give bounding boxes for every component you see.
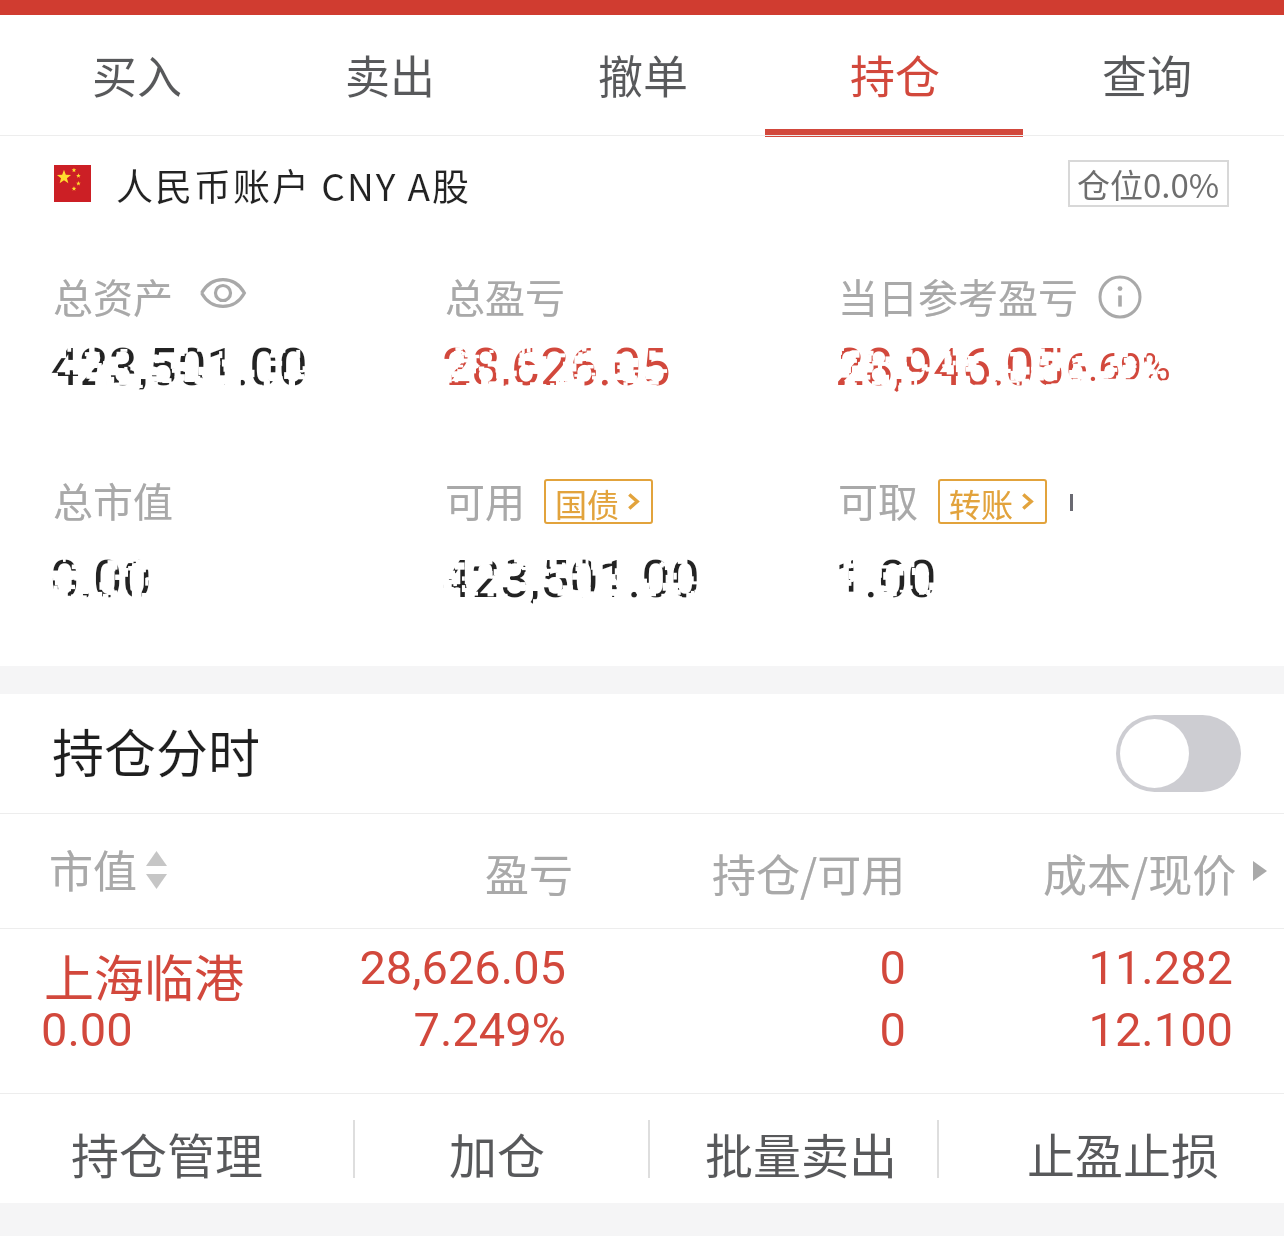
staticText: 0	[406, 1002, 906, 1057]
button[interactable]: 持仓管理	[0, 1094, 353, 1203]
button[interactable]: 卖出	[264, 15, 517, 136]
button[interactable]: Information	[1098, 275, 1142, 319]
button[interactable]: 止盈止损	[937, 1094, 1284, 1203]
staticText: 当日参考盈亏	[838, 267, 1078, 325]
staticText: 撤单	[598, 42, 689, 107]
staticText: 持仓分时	[52, 713, 261, 788]
staticText: 持仓	[850, 42, 941, 107]
staticText: 国债	[555, 480, 620, 525]
staticText: 7.249%	[66, 1002, 566, 1057]
staticText: 持仓管理	[71, 1118, 264, 1188]
button[interactable]: More columns	[1240, 839, 1284, 903]
staticText: 总资产	[53, 267, 173, 325]
staticText: 买入	[92, 42, 183, 107]
staticText: 持仓/可用	[712, 841, 906, 905]
button[interactable]: 加仓	[353, 1094, 648, 1203]
staticText: 卖出	[345, 42, 436, 107]
staticText: 28,626.05	[442, 337, 671, 398]
staticText: 可取	[838, 471, 918, 529]
button[interactable]: 持仓	[769, 15, 1021, 136]
staticText: 查询	[1102, 42, 1193, 107]
staticText: 仓位0.0%	[1077, 160, 1220, 207]
staticText: 1.00	[835, 549, 937, 610]
button[interactable]: 仓位0.0%	[1077, 160, 1220, 207]
button[interactable]: 转账	[938, 479, 1047, 524]
staticText: 6.69%	[1066, 345, 1171, 391]
staticText: 423,501.00	[50, 337, 308, 398]
button[interactable]: Toggle intraday chart	[1116, 715, 1241, 792]
button[interactable]: 批量卖出	[648, 1094, 937, 1203]
button[interactable]: 查询	[1021, 15, 1273, 136]
staticText: 人民币账户 CNY A股	[116, 158, 472, 212]
staticText: 11.282	[733, 940, 1233, 995]
staticText: 盈亏	[485, 841, 573, 905]
staticText: 0.00	[50, 549, 152, 610]
staticText: 28,946.05	[835, 337, 1064, 398]
staticText: 总盈亏	[445, 267, 565, 325]
button[interactable]: Toggle amount visibility	[200, 277, 246, 309]
staticText: 转账	[949, 480, 1014, 525]
staticText: 12.100	[733, 1002, 1233, 1057]
staticText: 0	[406, 940, 906, 995]
staticText: 0.00	[41, 1002, 133, 1057]
button[interactable]: 市值	[40, 832, 175, 908]
staticText: 市值	[49, 837, 137, 901]
staticText: 可用	[445, 471, 525, 529]
staticText: 加仓	[449, 1118, 546, 1188]
staticText: 上海临港	[44, 939, 244, 1011]
button[interactable]: 买入	[11, 15, 264, 136]
staticText: 总市值	[53, 471, 173, 529]
staticText: 423,501.00	[442, 549, 700, 610]
staticText: 28,626.05	[66, 940, 566, 995]
button[interactable]: 上海临港	[0, 929, 1284, 1093]
button[interactable]: 撤单	[517, 15, 769, 136]
button[interactable]: 国债	[544, 479, 653, 524]
staticText: 批量卖出	[705, 1118, 898, 1188]
staticText: 止盈止损	[1027, 1118, 1220, 1188]
staticText: 成本/现价	[1043, 841, 1237, 905]
